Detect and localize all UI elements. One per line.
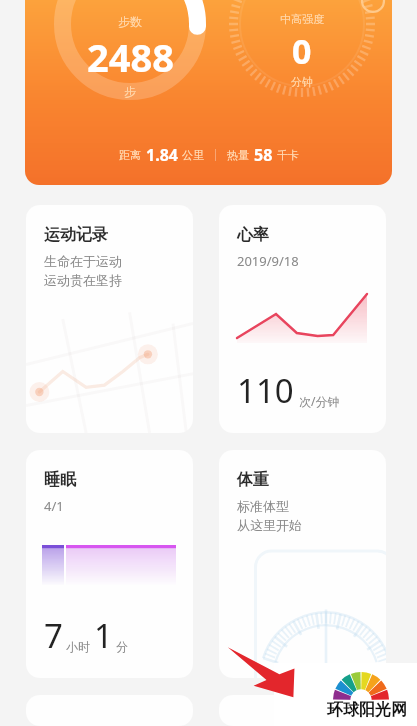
staticText: 步 xyxy=(124,84,136,99)
staticText: 环球阳光网 xyxy=(327,700,407,720)
button[interactable]: 步数 xyxy=(25,0,392,185)
button[interactable]: 睡眠 xyxy=(26,450,193,678)
staticText: 距离 xyxy=(119,148,141,162)
staticText: 4/1 xyxy=(44,497,64,515)
staticText: 生命在于运动 xyxy=(44,253,122,269)
staticText: 次/分钟 xyxy=(299,393,340,409)
staticText: 分 xyxy=(116,639,128,654)
staticText: 睡眠 xyxy=(44,470,76,490)
staticText: 热量 xyxy=(227,148,249,162)
staticText: 公里 xyxy=(182,148,204,162)
button[interactable]: 心率 xyxy=(219,205,386,433)
staticText: 分钟 xyxy=(291,75,313,89)
staticText: 中高强度 xyxy=(280,12,324,26)
staticText: 小时 xyxy=(66,639,90,654)
staticText: 运动贵在坚持 xyxy=(44,272,122,288)
button[interactable]: 运动记录 xyxy=(26,205,193,433)
staticText: 0 xyxy=(292,28,312,74)
staticText: 7 xyxy=(44,613,63,658)
staticText: 运动记录 xyxy=(44,225,108,245)
staticText: 2488 xyxy=(87,31,174,83)
staticText: 千卡 xyxy=(277,148,299,162)
button[interactable]: More xyxy=(362,0,384,12)
staticText: 标准体型 xyxy=(237,498,289,514)
button[interactable] xyxy=(219,695,386,726)
staticText: 心率 xyxy=(237,225,269,245)
staticText: 58 xyxy=(254,144,273,166)
staticText: 1.84 xyxy=(146,144,178,166)
staticText: 110 xyxy=(237,368,294,413)
staticText: 体重 xyxy=(237,470,269,490)
staticText: 1 xyxy=(94,613,113,658)
staticText: 从这里开始 xyxy=(237,517,302,533)
staticText: 步数 xyxy=(118,14,142,29)
button[interactable]: 体重 xyxy=(219,450,386,678)
staticText: 2019/9/18 xyxy=(237,252,299,270)
